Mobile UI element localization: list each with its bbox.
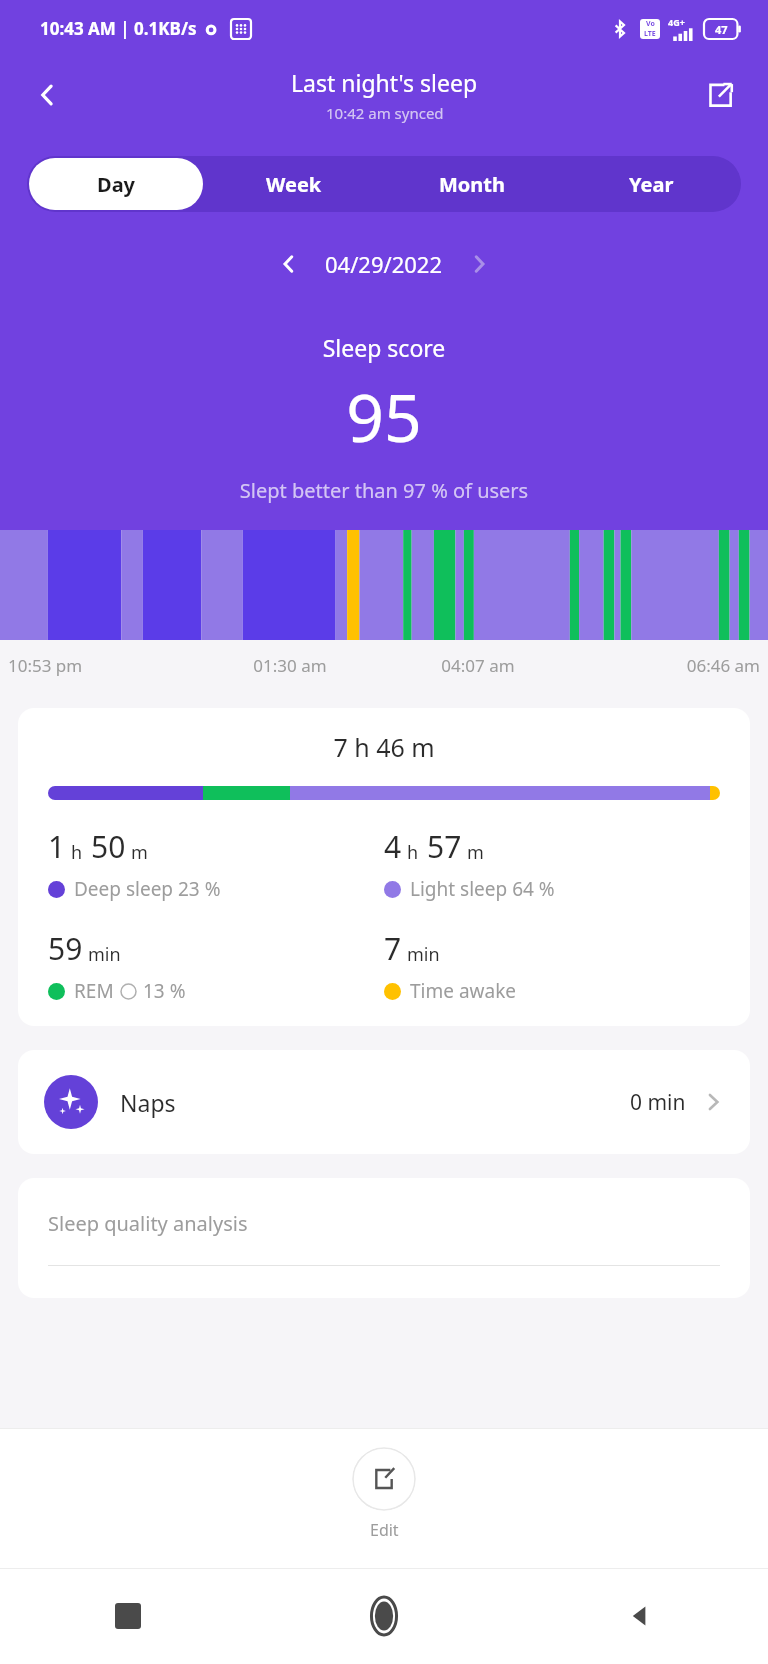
staticText: Sleep score [0, 332, 768, 363]
button[interactable]: Back [24, 71, 72, 119]
staticText: Year [629, 171, 674, 198]
staticText: Month [439, 171, 506, 198]
staticText: 1 [48, 826, 66, 867]
staticText: 4 [384, 826, 402, 867]
staticText: 10:43 AM | 0.1KB/s [40, 17, 197, 40]
staticText: 13 % [143, 978, 186, 1004]
staticText: min [407, 942, 440, 967]
staticText: Week [266, 171, 322, 198]
button[interactable]: Recents [0, 1568, 256, 1664]
staticText: Time awake [410, 978, 517, 1004]
staticText: REM [74, 978, 114, 1004]
button[interactable]: Day [29, 158, 203, 210]
staticText: 7 h 46 m [48, 730, 720, 764]
staticText: 50 [91, 826, 126, 867]
button[interactable]: Week [205, 156, 383, 212]
staticText: 10:53 pm [8, 654, 196, 677]
staticText: 57 [427, 826, 462, 867]
staticText: Light sleep 64 % [410, 876, 555, 902]
staticText: 47 [715, 22, 728, 37]
staticText: LTE [644, 29, 656, 39]
button[interactable]: Home [256, 1568, 512, 1664]
staticText: 04:07 am [384, 654, 572, 677]
button[interactable]: Next day [457, 242, 501, 286]
button[interactable]: Naps [18, 1050, 750, 1154]
staticText: min [88, 942, 121, 967]
staticText: h [407, 840, 419, 865]
staticText: Vo [646, 19, 655, 29]
staticText: Day [97, 171, 136, 198]
staticText: 06:46 am [572, 654, 760, 677]
button[interactable]: 7 h 46 m [18, 708, 750, 1026]
staticText: Deep sleep 23 % [74, 876, 221, 902]
staticText: 01:30 am [196, 654, 384, 677]
staticText: Edit [370, 1519, 399, 1541]
staticText: 0 min [630, 1088, 686, 1117]
button[interactable]: Back [512, 1568, 768, 1664]
button[interactable]: Month [383, 156, 562, 212]
button[interactable]: Sleep quality analysis [18, 1178, 750, 1298]
staticText: 59 [48, 928, 83, 969]
button[interactable]: Previous day [267, 242, 311, 286]
staticText: m [467, 840, 484, 865]
button[interactable]: Share [696, 71, 744, 119]
button[interactable]: Edit [332, 1447, 436, 1541]
staticText: 04/29/2022 [325, 249, 443, 279]
staticText: Sleep quality analysis [48, 1210, 248, 1237]
staticText: m [131, 840, 148, 865]
staticText: Slept better than 97 % of users [0, 477, 768, 504]
staticText: Last night's sleep [291, 67, 478, 98]
staticText: Naps [120, 1087, 176, 1118]
staticText: 95 [0, 371, 768, 461]
staticText: 10:42 am synced [326, 103, 444, 123]
staticText: 7 [384, 928, 402, 969]
staticText: h [71, 840, 83, 865]
button[interactable]: Year [562, 156, 741, 212]
staticText: 4G+ [668, 16, 685, 28]
